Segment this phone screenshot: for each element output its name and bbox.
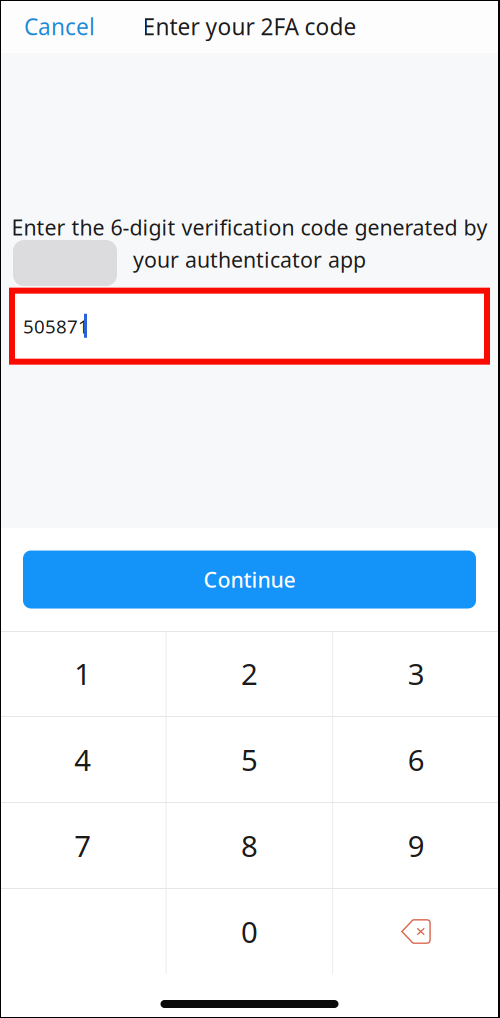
button[interactable]: Continue <box>23 550 476 608</box>
staticText: 4 <box>74 740 91 779</box>
staticText: 5 <box>241 740 258 779</box>
button[interactable]: 2 <box>167 631 332 716</box>
staticText: 7 <box>74 826 91 865</box>
staticText: 1 <box>74 654 91 693</box>
staticText: Enter your 2FA code <box>142 11 356 41</box>
button[interactable]: Delete <box>333 889 499 974</box>
button[interactable]: 4 <box>0 717 166 802</box>
button[interactable]: 8 <box>167 803 332 888</box>
staticText: 0 <box>241 912 258 951</box>
staticText: Cancel <box>24 11 95 41</box>
button[interactable]: 6 <box>333 717 499 802</box>
button[interactable]: 0 <box>167 889 332 974</box>
staticText: Continue <box>203 565 295 594</box>
staticText: 2 <box>241 654 258 693</box>
button[interactable]: 7 <box>0 803 166 888</box>
button[interactable]: 5 <box>167 717 332 802</box>
staticText: Enter the 6-digit verification code gene… <box>11 213 487 241</box>
button[interactable]: 1 <box>0 631 166 716</box>
staticText: 8 <box>241 826 258 865</box>
staticText: 505871 <box>23 314 89 339</box>
button[interactable]: 3 <box>333 631 499 716</box>
button[interactable]: Cancel <box>0 0 119 52</box>
staticText: 3 <box>408 654 425 693</box>
staticText: your authenticator app <box>133 245 366 274</box>
staticText: 6 <box>408 740 425 779</box>
button[interactable]: 9 <box>333 803 499 888</box>
staticText: 9 <box>408 826 425 865</box>
